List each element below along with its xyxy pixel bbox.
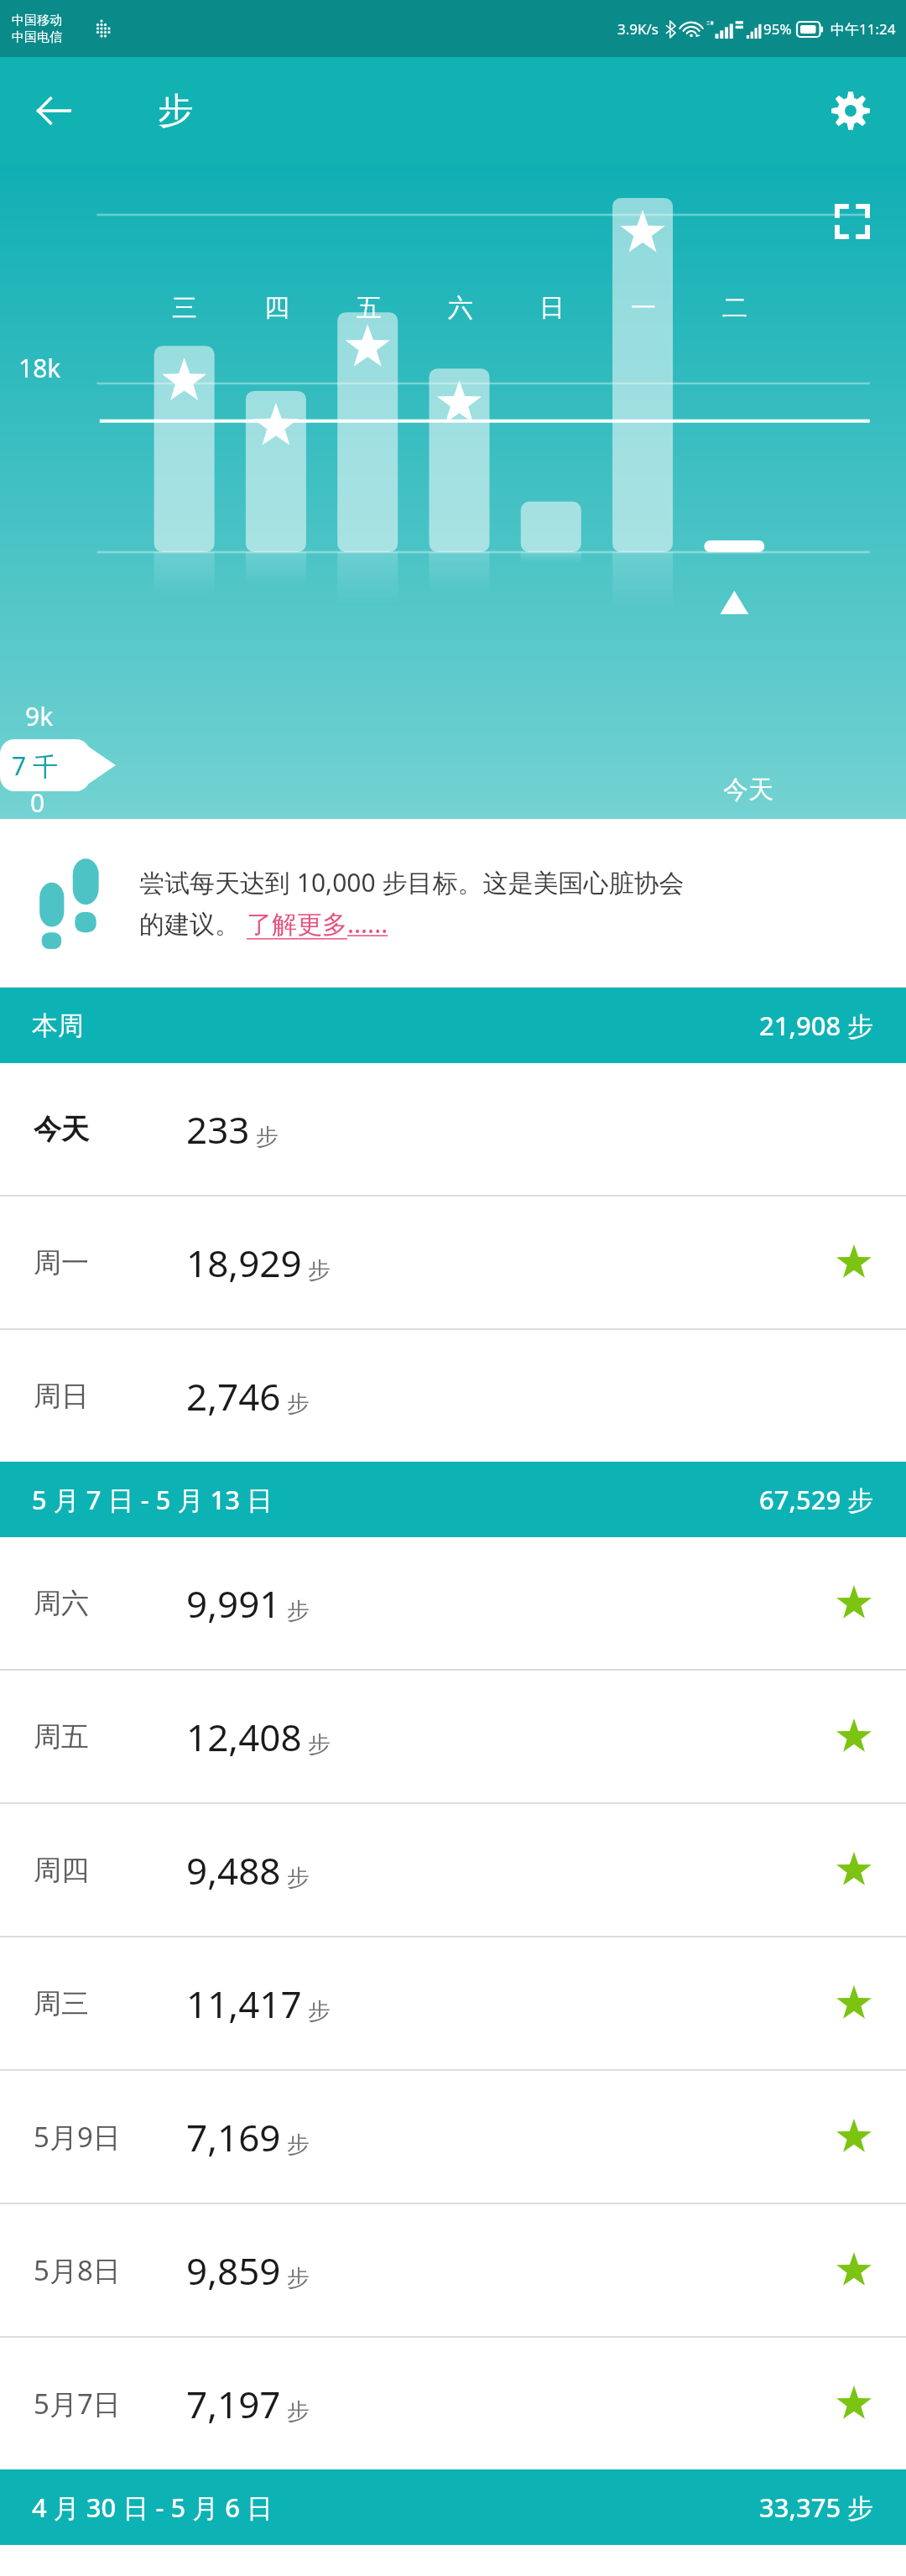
staticText: 5月9日 [34,2118,121,2156]
staticText: 2,746 [186,1371,281,1421]
staticText: 本周 [32,1009,84,1042]
staticText: 今天 [34,1112,89,1147]
staticText: 一 [631,292,656,324]
staticText: 4 月 30 日 - 5 月 6 日 [32,2490,273,2525]
button[interactable]: 周五 [0,1671,906,1802]
staticText: 9,488 [186,1845,281,1895]
staticText: 步 [287,1390,310,1418]
staticText: 步 [158,89,193,133]
button[interactable]: 周六 [0,1537,906,1669]
staticText: 中国移动 [12,13,62,29]
staticText: 7,197 [186,2379,281,2429]
button[interactable]: Fullscreen [827,196,877,247]
staticText: 7,169 [186,2112,281,2162]
staticText: 步 [308,1256,331,1285]
staticText: 18k [18,351,61,385]
staticText: 三 [172,292,197,324]
staticText: 二 [722,292,747,324]
button[interactable]: 4 月 30 日 - 5 月 6 日 [0,2469,906,2545]
staticText: 周三 [34,1986,89,2021]
staticText: 21,908 步 [759,1008,874,1043]
button[interactable]: 周一 [0,1197,906,1328]
button[interactable]: 5月7日 [0,2338,906,2469]
staticText: 233 [186,1104,250,1155]
staticText: 5 月 7 日 - 5 月 13 日 [32,1482,273,1517]
button[interactable]: Settings [812,72,889,149]
button[interactable]: 尝试每天达到 10,000 步目标。这是美国心脏协会 [0,819,906,987]
staticText: 步 [256,1123,279,1151]
button[interactable]: 5 月 7 日 - 5 月 13 日 [0,1462,906,1537]
button[interactable]: 周四 [0,1804,906,1936]
staticText: 四 [264,292,289,324]
staticText: 步 [287,1597,310,1625]
staticText: 步 [287,2397,310,2426]
staticText: 步 [287,2130,310,2159]
staticText: 7 千 [12,748,58,783]
staticText: 11,417 [186,1979,302,2029]
staticText: 5月7日 [34,2385,121,2422]
staticText: 67,529 步 [759,1482,874,1517]
button[interactable]: Back [17,74,91,148]
staticText: 9k [25,699,54,733]
staticText: 95% [763,19,792,39]
button[interactable]: 了解更多...... [247,906,388,941]
staticText: 9,859 [186,2245,281,2296]
button[interactable]: 5月9日 [0,2071,906,2203]
staticText: 五 [357,292,382,324]
staticText: 中午11:24 [830,19,896,39]
button[interactable]: 本周 [0,988,906,1063]
staticText: 周五 [34,1719,89,1755]
staticText: 周四 [34,1853,89,1888]
staticText: 中国电信 [12,29,62,45]
staticText: 周六 [34,1586,89,1621]
staticText: 日 [539,292,565,324]
staticText: 周日 [34,1379,89,1414]
staticText: 12,408 [186,1712,302,1762]
button[interactable]: 周日 [0,1330,906,1462]
staticText: 9,991 [186,1578,281,1629]
staticText: 的建议。 [139,906,247,941]
staticText: 步 [287,1864,310,1892]
staticText: 步 [308,1997,331,2026]
staticText: 步 [287,2264,310,2292]
staticText: 3.9K/s [617,19,659,39]
button[interactable]: 今天 [0,1063,906,1195]
staticText: 18,929 [186,1238,302,1288]
staticText: 0 [30,785,45,819]
staticText: 5月8日 [34,2251,121,2289]
staticText: 33,375 步 [759,2490,874,2525]
staticText: 尝试每天达到 10,000 步目标。这是美国心脏协会 [139,865,685,900]
staticText: 步 [308,1730,331,1759]
button[interactable]: 5月8日 [0,2204,906,2336]
button[interactable]: 周三 [0,1937,906,2069]
staticText: 周一 [34,1245,89,1280]
staticText: 六 [448,292,473,324]
staticText: 今天 [723,774,773,806]
